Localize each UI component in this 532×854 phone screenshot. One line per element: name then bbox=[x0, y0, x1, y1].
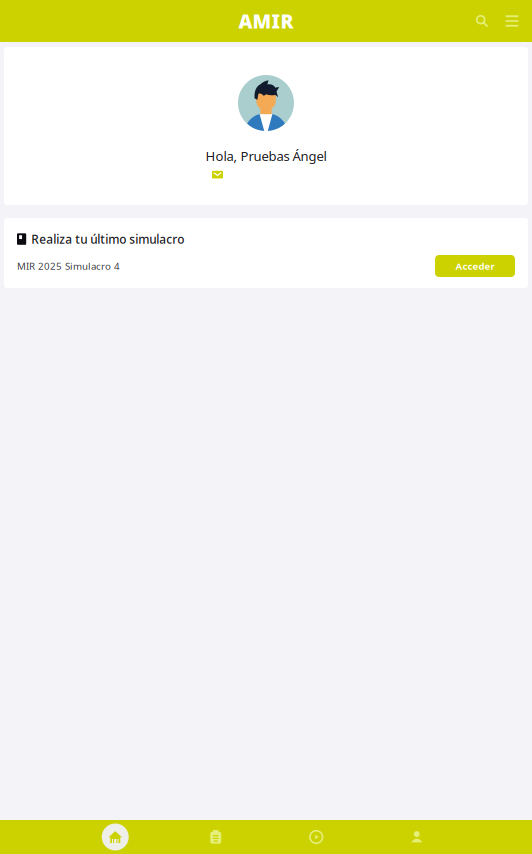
button[interactable]: Simulacros bbox=[165, 820, 266, 854]
button[interactable]: Inicio bbox=[65, 820, 165, 854]
staticText: Acceder bbox=[455, 259, 494, 273]
button[interactable]: Acceder bbox=[435, 255, 515, 277]
button[interactable]: Perfil bbox=[366, 820, 467, 854]
staticText: Realiza tu último simulacro bbox=[31, 231, 184, 247]
button[interactable]: Buscar bbox=[467, 3, 497, 39]
staticText: MIR 2025 Simulacro 4 bbox=[17, 259, 120, 273]
button[interactable]: Menú bbox=[497, 3, 527, 39]
button[interactable]: Mensajes bbox=[209, 168, 226, 181]
staticText: Hola, Pruebas Ángel bbox=[205, 147, 326, 165]
staticText: AMIR bbox=[238, 8, 293, 34]
button[interactable]: Clases bbox=[266, 820, 366, 854]
